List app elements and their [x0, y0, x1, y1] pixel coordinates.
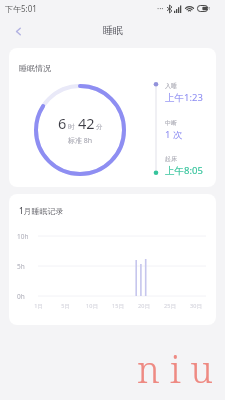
button[interactable]: Back: [6, 19, 30, 43]
staticText: 25日: [157, 302, 183, 310]
staticText: 上午1:23: [165, 91, 203, 104]
staticText: 20日: [131, 302, 157, 310]
staticText: 30日: [183, 302, 209, 310]
staticText: 睡眠情况: [19, 63, 51, 73]
staticText: ···: [157, 3, 164, 14]
staticText: 15日: [105, 302, 131, 310]
staticText: 10日: [79, 302, 105, 310]
staticText: 1月睡眠记录: [19, 205, 64, 216]
staticText: 起床: [165, 155, 177, 163]
staticText: 入睡: [165, 82, 177, 90]
staticText: 下午5:01: [5, 3, 37, 14]
staticText: 分: [96, 123, 103, 131]
staticText: niu: [137, 345, 223, 394]
staticText: 标准 8h: [68, 136, 93, 146]
staticText: 上午8:05: [165, 164, 203, 177]
staticText: 0h: [17, 292, 25, 301]
staticText: 5h: [17, 262, 25, 271]
staticText: 10h: [17, 232, 29, 241]
staticText: 中断: [165, 119, 177, 127]
staticText: 1日: [25, 302, 52, 310]
staticText: 时: [68, 123, 75, 131]
staticText: 睡眠: [103, 24, 123, 37]
staticText: 6: [58, 113, 67, 133]
staticText: 1 次: [165, 128, 183, 141]
staticText: 42: [78, 113, 95, 133]
staticText: 5日: [52, 302, 79, 310]
